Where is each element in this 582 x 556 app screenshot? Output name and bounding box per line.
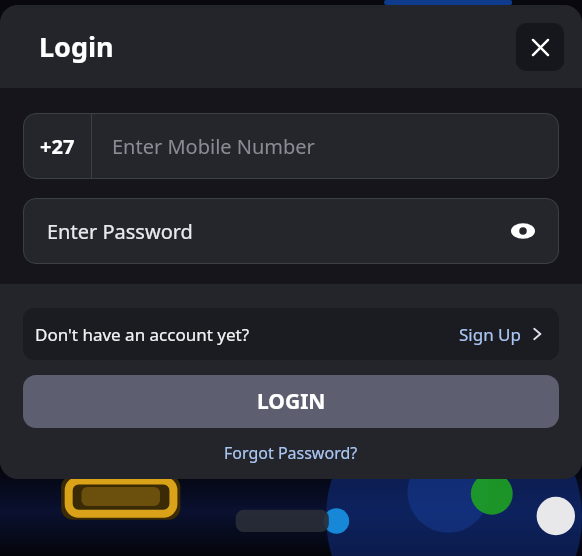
button[interactable]: Show password	[503, 211, 543, 251]
staticText: Forgot Password?	[224, 442, 358, 464]
button[interactable]: Don't have an account yet?	[23, 308, 559, 360]
staticText: Enter Mobile Number	[112, 133, 315, 160]
staticText: Login	[39, 28, 114, 65]
staticText: LOGIN	[257, 387, 326, 416]
button[interactable]: Forgot Password?	[214, 438, 368, 468]
button[interactable]: Close	[516, 23, 564, 71]
staticText: +27	[40, 133, 75, 160]
staticText: Don't have an account yet?	[35, 323, 250, 346]
staticText: Sign Up	[459, 323, 521, 346]
button[interactable]: Enter Password	[23, 198, 559, 264]
staticText: Enter Password	[47, 218, 193, 245]
button[interactable]: LOGIN	[23, 375, 559, 428]
button[interactable]: +27	[23, 113, 559, 179]
